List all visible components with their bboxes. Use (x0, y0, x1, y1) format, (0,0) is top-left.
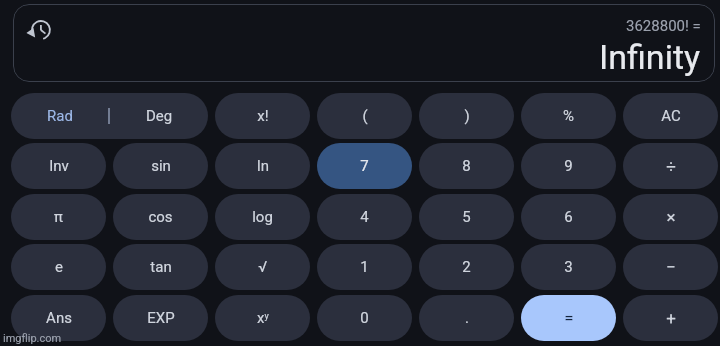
staticText: . (465, 309, 469, 327)
button[interactable]: 5 (419, 194, 514, 240)
button[interactable]: x! (215, 93, 310, 139)
button[interactable]: 7 (317, 143, 412, 189)
staticText: π (54, 208, 63, 226)
staticText: sin (151, 157, 171, 175)
button[interactable]: 2 (419, 244, 514, 290)
button[interactable]: × (623, 194, 718, 240)
button[interactable]: ) (419, 93, 514, 139)
staticText: 8 (462, 157, 471, 175)
button[interactable]: π (11, 194, 106, 240)
staticText: √ (258, 258, 267, 276)
button[interactable]: AC (623, 93, 718, 139)
button[interactable]: xy (215, 295, 310, 341)
staticText: tan (150, 258, 172, 276)
button[interactable]: ( (317, 93, 412, 139)
button[interactable]: = (521, 295, 616, 341)
staticText: = (564, 308, 574, 328)
button[interactable]: EXP (113, 295, 208, 341)
button[interactable]: 8 (419, 143, 514, 189)
staticText: imgflip.com (3, 332, 62, 345)
staticText: Deg (146, 107, 173, 125)
button[interactable]: 1 (317, 244, 412, 290)
staticText: cos (148, 208, 173, 226)
button[interactable]: 3 (521, 244, 616, 290)
staticText: 9 (564, 157, 573, 175)
staticText: Inv (49, 157, 69, 175)
staticText: 4 (360, 208, 369, 226)
staticText: 5 (462, 208, 471, 226)
button[interactable]: e (11, 244, 106, 290)
button[interactable]: ln (215, 143, 310, 189)
staticText: 3628800! = (626, 17, 701, 35)
button[interactable]: ÷ (623, 143, 718, 189)
staticText: ln (257, 157, 269, 175)
button[interactable]: √ (215, 244, 310, 290)
staticText: − (666, 257, 676, 277)
button[interactable]: − (623, 244, 718, 290)
button[interactable]: cos (113, 194, 208, 240)
staticText: Rad (47, 107, 73, 125)
staticText: Infinity (599, 37, 701, 77)
staticText: e (55, 258, 63, 276)
button[interactable]: log (215, 194, 310, 240)
button[interactable]: + (623, 295, 718, 341)
button[interactable]: sin (113, 143, 208, 189)
button[interactable]: 4 (317, 194, 412, 240)
staticText: ) (464, 107, 470, 125)
staticText: xy (257, 309, 269, 327)
button[interactable]: Inv (11, 143, 106, 189)
staticText: 3 (564, 258, 573, 276)
staticText: ( (362, 107, 368, 125)
button[interactable]: Rad (11, 93, 208, 139)
button[interactable]: tan (113, 244, 208, 290)
staticText: 2 (462, 258, 471, 276)
staticText: 1 (360, 258, 369, 276)
button[interactable]: 9 (521, 143, 616, 189)
staticText: 6 (564, 208, 573, 226)
staticText: AC (661, 107, 681, 125)
button[interactable]: Ans (11, 295, 106, 341)
button[interactable]: History (26, 17, 52, 43)
button[interactable]: 6 (521, 194, 616, 240)
button[interactable]: % (521, 93, 616, 139)
staticText: log (252, 208, 273, 226)
staticText: % (563, 107, 574, 125)
staticText: ÷ (666, 156, 676, 176)
button[interactable]: . (419, 295, 514, 341)
staticText: × (666, 207, 676, 227)
staticText: Ans (46, 309, 72, 327)
staticText: 7 (360, 157, 369, 175)
staticText: EXP (147, 309, 175, 327)
button[interactable]: 0 (317, 295, 412, 341)
staticText: + (666, 308, 676, 328)
staticText: 0 (360, 309, 369, 327)
staticText: x! (257, 107, 269, 125)
